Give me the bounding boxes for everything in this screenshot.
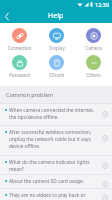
button[interactable]: They are no vidoes to play back or — [0, 188, 112, 200]
button[interactable]: Camera — [75, 28, 112, 51]
staticText: Help — [48, 11, 64, 21]
button[interactable]: Back — [0, 9, 14, 23]
staticText: Connection — [7, 45, 32, 51]
button[interactable]: SDcard — [38, 55, 75, 78]
button[interactable]: Password — [0, 55, 38, 78]
staticText: 12:39 — [95, 1, 110, 8]
staticText: When camera connected the internet, — [9, 107, 95, 114]
staticText: unplug the network cable but it says — [9, 136, 91, 143]
staticText: About the camera SD card usage. — [9, 178, 84, 185]
staticText: Password — [9, 72, 30, 78]
staticText: the tips/device offline. — [9, 114, 59, 121]
staticText: device offline. — [9, 143, 41, 150]
staticText: Others — [86, 72, 101, 78]
staticText: After successful wireless connection, — [9, 129, 92, 136]
button[interactable]: Connection — [0, 28, 38, 51]
staticText: SDcard — [49, 72, 64, 78]
button[interactable]: About the camera SD card usage. — [0, 174, 112, 188]
staticText: Common problem — [6, 91, 54, 98]
staticText: What do the camera indicator lights — [9, 159, 90, 166]
button[interactable]: Display — [38, 28, 75, 51]
staticText: They are no vidoes to play back or — [9, 192, 86, 199]
button[interactable]: Others — [75, 55, 112, 78]
button[interactable]: What do the camera indicator lights — [0, 155, 112, 174]
staticText: mean? — [9, 166, 24, 173]
staticText: Camera — [85, 45, 102, 51]
button[interactable]: When camera connected the internet, — [0, 103, 112, 125]
staticText: Display — [49, 45, 65, 51]
button[interactable]: After successful wireless connection, — [0, 125, 112, 155]
